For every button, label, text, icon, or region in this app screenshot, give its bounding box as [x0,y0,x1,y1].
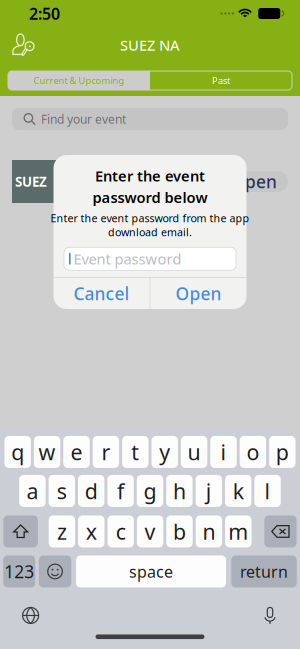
staticText: y [159,438,170,466]
button[interactable]: Cancel [53,278,150,309]
button[interactable]: f [107,475,134,507]
staticText: q [11,438,24,466]
button[interactable]: 123 [3,555,35,587]
staticText: g [143,477,156,505]
button[interactable]: j [196,475,222,507]
button[interactable]: z [49,515,75,547]
button[interactable]: o [240,436,266,468]
button[interactable]: a [19,475,46,507]
button[interactable]: e [63,436,90,468]
staticText: x [86,517,97,546]
button[interactable]: Delete [264,515,297,547]
button[interactable]: m [225,515,251,547]
staticText: Enter the event [95,166,205,185]
staticText: j [206,477,212,505]
staticText: u [188,438,201,466]
staticText: c [116,517,126,546]
staticText: n [202,517,215,546]
staticText: o [246,438,259,466]
button[interactable]: Emoji [39,555,71,587]
button[interactable]: r [93,436,119,468]
button[interactable]: x [78,515,104,547]
staticText: z [57,517,67,546]
button[interactable]: Shift [3,515,38,547]
button[interactable]: s [49,475,75,507]
button[interactable]: l [254,475,281,507]
button[interactable]: w [34,436,60,468]
staticText: Event password [74,249,182,268]
staticText: SUEZ NA [120,35,180,55]
button[interactable]: Current & Upcoming [8,71,150,90]
button[interactable]: p [269,436,295,468]
button[interactable]: c [107,515,134,547]
staticText: Open [175,282,221,305]
button[interactable]: Switch keyboard [16,604,46,626]
staticText: return [240,561,288,582]
staticText: 2:50 [29,3,60,24]
button[interactable]: t [122,436,148,468]
staticText: a [26,477,38,505]
staticText: Open [231,170,277,193]
staticText: k [233,477,244,505]
staticText: SUEZ [15,173,47,190]
staticText: f [117,477,124,505]
button[interactable]: space [76,555,226,587]
staticText: w [39,438,56,466]
button[interactable]: h [166,475,193,507]
button[interactable]: v [137,515,163,547]
button[interactable]: return [231,555,297,587]
button[interactable]: u [181,436,207,468]
staticText: b [173,517,186,546]
staticText: p [276,438,289,466]
button[interactable]: Past [150,71,292,90]
button[interactable]: d [78,475,104,507]
staticText: l [265,477,271,505]
button[interactable]: i [210,436,237,468]
button[interactable]: Dictate [255,604,285,626]
button[interactable]: Account [12,33,35,57]
staticText: d [85,477,98,505]
staticText: e [70,438,82,466]
button[interactable]: n [196,515,222,547]
staticText: t [131,438,139,466]
staticText: m [228,517,248,546]
button[interactable]: Open [150,278,247,309]
staticText: h [173,477,186,505]
staticText: Enter the event password from the app [50,211,249,225]
staticText: Past [212,74,230,87]
staticText: space [129,561,173,582]
button[interactable]: k [225,475,251,507]
staticText: i [220,438,226,466]
staticText: Cancel [74,282,130,305]
staticText: s [57,477,67,505]
staticText: v [145,517,156,546]
button[interactable]: b [166,515,193,547]
staticText: download email. [108,225,192,239]
button[interactable]: Open [220,171,288,192]
staticText: password below [92,187,207,207]
staticText: Current & Upcoming [33,74,124,87]
staticText: r [101,438,110,466]
button[interactable]: g [137,475,163,507]
button[interactable]: q [4,436,31,468]
button[interactable]: y [151,436,178,468]
staticText: Find your event [41,111,126,127]
staticText: 123 [4,560,34,583]
